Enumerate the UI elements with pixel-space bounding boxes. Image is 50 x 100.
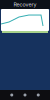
staticText: Recovery xyxy=(13,1,36,8)
